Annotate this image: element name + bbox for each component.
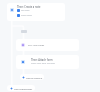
staticText: Send email [21, 14, 32, 17]
button[interactable]: For: Sub tasks [16, 39, 79, 51]
staticText: Then: Attach form [31, 58, 53, 61]
button[interactable]: Then: Create a note [7, 3, 65, 21]
button[interactable]: Add component [7, 85, 35, 91]
button[interactable]: Then: Attach form [16, 55, 79, 69]
staticText: Send 2023 data and files [31, 62, 56, 65]
staticText: Add component [14, 87, 33, 90]
button[interactable]: Add to branch [20, 74, 44, 80]
staticText: Then: Create a note [17, 5, 41, 8]
staticText: Add to branch [26, 76, 43, 79]
staticText: For: Sub tasks [28, 43, 45, 46]
staticText: Get note [21, 9, 30, 12]
